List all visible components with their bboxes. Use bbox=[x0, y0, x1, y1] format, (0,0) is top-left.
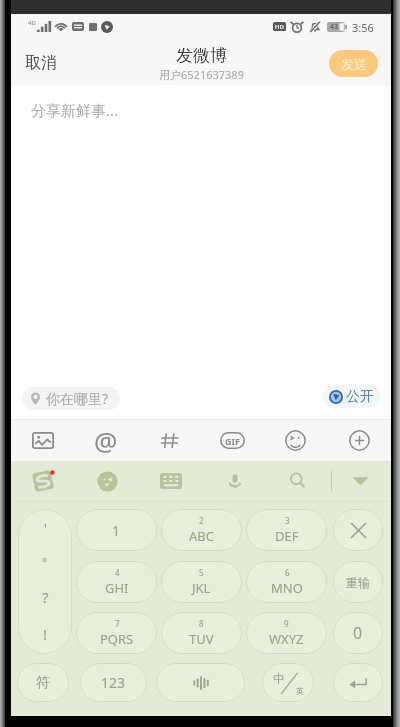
staticText: 4 bbox=[115, 567, 120, 578]
button[interactable]: 8 bbox=[161, 612, 242, 654]
staticText: HD bbox=[275, 23, 284, 31]
button[interactable]: 4 bbox=[76, 561, 157, 603]
button[interactable]: Add topic bbox=[151, 420, 189, 461]
staticText: ABC bbox=[189, 527, 214, 545]
staticText: 用户6521637389 bbox=[159, 67, 244, 82]
staticText: TUV bbox=[189, 630, 214, 648]
button[interactable]: 取消 bbox=[11, 45, 71, 81]
staticText: JKL bbox=[192, 579, 211, 597]
staticText: 0 bbox=[353, 622, 363, 644]
button[interactable]: Keyboard bbox=[155, 461, 187, 501]
button[interactable]: Numbers bbox=[80, 663, 147, 702]
button[interactable]: Language bbox=[262, 663, 314, 702]
button[interactable]: 发送 bbox=[329, 50, 378, 77]
staticText: PQRS bbox=[100, 630, 134, 648]
button[interactable]: Zero bbox=[333, 612, 383, 654]
button[interactable]: Voice bbox=[219, 461, 251, 501]
button[interactable]: Voice input bbox=[156, 663, 245, 702]
staticText: @ bbox=[94, 423, 118, 458]
staticText: 取消 bbox=[25, 53, 57, 73]
staticText: 6 bbox=[285, 567, 290, 578]
staticText: 9 bbox=[284, 618, 289, 629]
staticText: 123 bbox=[101, 673, 126, 692]
button[interactable]: Mention someone bbox=[87, 420, 125, 461]
staticText: WXYZ bbox=[269, 630, 304, 648]
button[interactable]: Clear bbox=[333, 561, 383, 603]
staticText: ° bbox=[42, 554, 48, 570]
staticText: 43 bbox=[330, 22, 339, 32]
staticText: 4G bbox=[28, 19, 36, 27]
button[interactable]: 7 bbox=[76, 612, 157, 654]
staticText: 英 bbox=[296, 686, 304, 696]
staticText: 2 bbox=[199, 515, 204, 526]
staticText: MNO bbox=[271, 579, 303, 597]
button[interactable]: 2 bbox=[161, 509, 242, 551]
button[interactable]: Enter bbox=[333, 663, 383, 702]
button[interactable]: Sogou input bbox=[27, 461, 59, 501]
staticText: 5 bbox=[199, 567, 204, 578]
staticText: GHI bbox=[105, 579, 129, 597]
button[interactable]: ' bbox=[18, 509, 72, 654]
button[interactable]: 3 bbox=[246, 509, 327, 551]
staticText: 8 bbox=[199, 618, 204, 629]
button[interactable]: Add photo bbox=[24, 420, 62, 461]
button[interactable]: Add emoji bbox=[276, 420, 314, 461]
staticText: 发送 bbox=[341, 56, 367, 72]
staticText: 3 bbox=[285, 515, 290, 526]
button[interactable]: Symbols bbox=[17, 663, 69, 702]
button[interactable]: 1 bbox=[76, 509, 157, 551]
staticText: 7 bbox=[115, 618, 120, 629]
button[interactable]: 5 bbox=[161, 561, 242, 603]
staticText: ' bbox=[44, 519, 47, 537]
staticText: 3:56 bbox=[352, 20, 374, 35]
button[interactable]: 6 bbox=[246, 561, 327, 603]
staticText: 发微博 bbox=[176, 45, 227, 66]
staticText: 分享新鲜事... bbox=[31, 100, 119, 120]
staticText: 中 bbox=[273, 671, 285, 686]
staticText: DEF bbox=[275, 527, 299, 545]
staticText: 1 bbox=[112, 521, 121, 540]
button[interactable]: 9 bbox=[246, 612, 327, 654]
staticText: 重输 bbox=[346, 575, 370, 590]
staticText: ? bbox=[42, 587, 49, 607]
button[interactable]: More options bbox=[340, 420, 378, 461]
button[interactable]: Add GIF bbox=[213, 420, 251, 461]
button[interactable]: Search bbox=[282, 461, 314, 501]
staticText: 你在哪里? bbox=[46, 389, 109, 408]
staticText: 公开 bbox=[346, 388, 374, 406]
button[interactable]: 你在哪里? bbox=[22, 387, 120, 410]
staticText: ! bbox=[43, 624, 48, 644]
button[interactable]: Emoji bbox=[91, 461, 123, 501]
button[interactable]: Hide keyboard bbox=[344, 461, 376, 501]
button[interactable]: Delete bbox=[333, 509, 383, 551]
staticText: 符 bbox=[36, 674, 50, 692]
staticText: GIF bbox=[225, 435, 240, 447]
button[interactable]: 公开 bbox=[323, 385, 380, 408]
